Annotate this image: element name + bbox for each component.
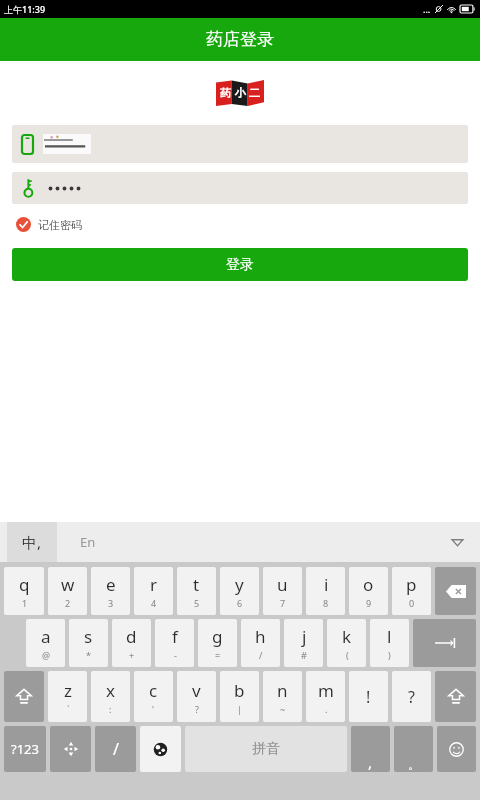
button[interactable]: p [392,567,431,615]
button[interactable]: Backspace [435,567,476,615]
button[interactable]: , [351,726,390,772]
button[interactable]: 记住密码 [14,215,84,234]
staticText: / [259,649,263,661]
staticText: f [172,625,178,648]
button[interactable]: e [91,567,130,615]
button[interactable]: v [177,671,216,722]
staticText: ... [423,3,431,15]
staticText: 9 [366,597,372,609]
button[interactable]: c [134,671,173,722]
staticText: 小 [235,86,246,100]
button[interactable]: 中, [7,522,57,562]
staticText: | [237,703,242,715]
button[interactable]: s [69,619,108,667]
staticText: s [84,625,93,648]
button[interactable]: En [80,533,96,551]
button[interactable]: k [327,619,366,667]
button[interactable]: d [112,619,151,667]
button[interactable]: f [155,619,194,667]
staticText: ? [408,686,415,708]
staticText: # [301,649,307,661]
staticText: 8 [323,597,329,609]
staticText: d [126,625,137,648]
button[interactable]: j [284,619,323,667]
button[interactable]: x [91,671,130,722]
staticText: n [277,679,288,702]
staticText: 4 [151,597,157,609]
button[interactable]: g [198,619,237,667]
button[interactable] [12,125,468,163]
button[interactable]: Change language [140,726,181,772]
staticText: 药店登录 [206,29,274,50]
staticText: ! [366,686,371,708]
staticText: 拼音 [252,740,280,758]
staticText: w [61,573,75,596]
button[interactable]: h [241,619,280,667]
button[interactable]: q [4,567,44,615]
button[interactable]: t [177,567,216,615]
staticText: 记住密码 [38,218,82,232]
staticText: l [387,625,392,648]
staticText: o [363,573,374,596]
button[interactable]: y [220,567,259,615]
staticText: e [106,573,116,596]
button[interactable]: w [48,567,87,615]
staticText: j [302,625,307,648]
button[interactable]: ?123 [4,726,46,772]
button[interactable]: 登录 [12,248,468,281]
staticText: k [342,625,352,648]
staticText: h [255,625,266,648]
staticText: v [192,679,201,702]
staticText: ?123 [11,740,39,758]
staticText: r [150,573,158,596]
button[interactable]: o [349,567,388,615]
staticText: ` [67,703,70,715]
staticText: ' [152,703,155,715]
button[interactable]: Move cursor [50,726,91,772]
staticText: x [106,679,115,702]
button[interactable]: ? [392,671,431,722]
staticText: t [193,573,200,596]
button[interactable]: b [220,671,259,722]
staticText: 2 [65,597,71,609]
staticText: ) [388,649,391,661]
staticText: ~ [280,703,286,715]
staticText: 3 [108,597,114,609]
button[interactable]: Shift [435,671,476,722]
button[interactable]: a [26,619,65,667]
button[interactable]: r [134,567,173,615]
button[interactable]: i [306,567,345,615]
staticText: = [215,649,221,661]
staticText: 。 [408,757,420,772]
button[interactable]: Enter [413,619,476,667]
button[interactable]: / [95,726,136,772]
staticText: i [324,573,329,596]
button[interactable]: Emoji [437,726,476,772]
staticText: 中, [22,532,42,552]
staticText: u [277,573,288,596]
button[interactable]: n [263,671,302,722]
button[interactable]: Shift [4,671,44,722]
button[interactable]: ! [349,671,388,722]
staticText: - [174,649,177,661]
button[interactable]: m [306,671,345,722]
button[interactable]: l [370,619,409,667]
staticText: 登录 [226,256,254,274]
staticText: p [406,573,417,596]
button[interactable]: u [263,567,302,615]
button[interactable]: z [48,671,87,722]
staticText: + [129,649,135,661]
staticText: a [41,625,51,648]
staticText: @ [42,649,51,661]
staticText: 上午11:39 [4,3,46,15]
staticText: 药 [220,86,231,100]
button[interactable]: 拼音 [185,726,347,772]
button[interactable]: 。 [394,726,433,772]
staticText: 5 [194,597,200,609]
staticText: . [325,703,328,715]
button[interactable]: Hide keyboard [448,533,466,551]
staticText: c [149,679,158,702]
staticText: b [234,679,245,702]
staticText: z [64,679,72,702]
button[interactable] [12,172,468,204]
